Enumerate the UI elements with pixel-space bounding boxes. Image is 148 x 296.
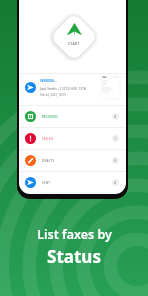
button[interactable]: DRAFTS <box>19 150 126 171</box>
button[interactable]: SENT <box>19 172 126 193</box>
staticText: DRAFTS <box>42 159 55 163</box>
staticText: RECEIVED <box>42 115 58 119</box>
staticText: 8 <box>114 114 117 119</box>
staticText: 4 <box>114 180 117 185</box>
staticText: List faxes by <box>37 226 112 243</box>
staticText: FAILED <box>42 137 54 141</box>
staticText: SENT <box>42 181 51 185</box>
button[interactable]: Start new fax <box>50 13 98 61</box>
staticText: SENDING... <box>40 79 58 83</box>
button[interactable]: RECEIVED <box>19 106 126 127</box>
staticText: Jack Smith +1 (212) 650-1318 <box>40 86 87 91</box>
staticText: START <box>64 41 84 46</box>
staticText: Status <box>47 245 101 268</box>
button[interactable]: SENDING... <box>19 74 126 104</box>
staticText: 1 <box>114 136 117 141</box>
staticText: Feb 24, 2023, 10:39 <box>40 93 66 97</box>
button[interactable]: FAILED <box>19 128 126 149</box>
staticText: 8 <box>114 158 117 163</box>
